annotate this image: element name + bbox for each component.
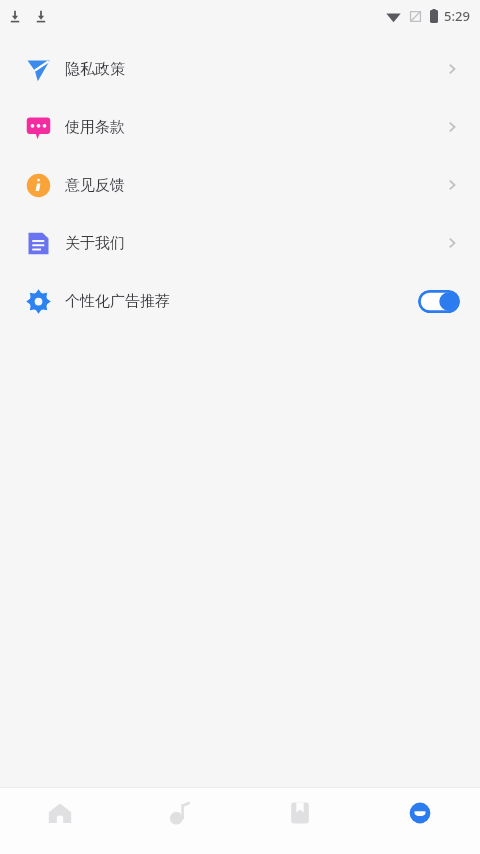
button[interactable]: 个性化广告推荐 xyxy=(0,272,480,330)
button[interactable]: 意见反馈 xyxy=(0,156,480,214)
staticText: 关于我们 xyxy=(65,234,125,253)
button[interactable]: 关于我们 xyxy=(0,214,480,272)
button[interactable]: Home xyxy=(0,788,120,854)
staticText: 意见反馈 xyxy=(65,176,125,195)
button[interactable]: 隐私政策 xyxy=(0,40,480,98)
button[interactable]: Bookmarks xyxy=(240,788,360,854)
button[interactable]: Personalized ads toggle xyxy=(418,290,460,313)
staticText: 使用条款 xyxy=(65,118,125,137)
staticText: 个性化广告推荐 xyxy=(65,292,170,311)
button[interactable]: 使用条款 xyxy=(0,98,480,156)
button[interactable]: Music xyxy=(120,788,240,854)
button[interactable]: Profile xyxy=(360,788,480,854)
staticText: 5:29 xyxy=(444,7,470,25)
staticText: 隐私政策 xyxy=(65,60,125,79)
